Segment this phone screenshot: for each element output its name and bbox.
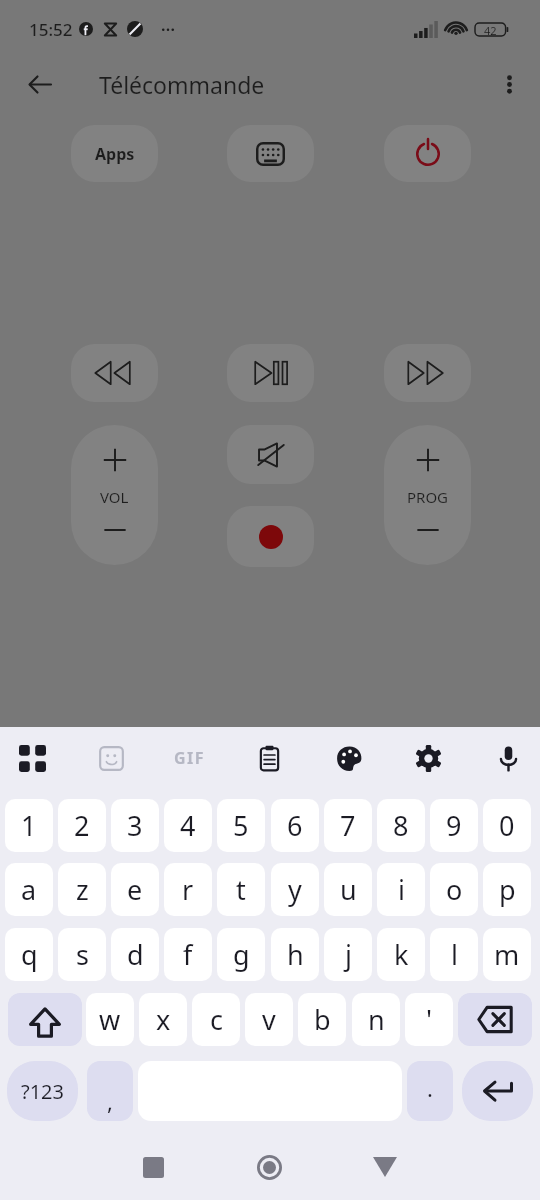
button[interactable]: Shift xyxy=(8,993,82,1046)
button[interactable]: b xyxy=(298,993,346,1046)
button[interactable]: , xyxy=(87,1061,133,1121)
button[interactable] xyxy=(227,506,314,567)
button[interactable]: g xyxy=(217,928,265,981)
button[interactable]: GIF xyxy=(163,731,217,785)
button[interactable] xyxy=(227,125,314,182)
button[interactable]: x xyxy=(139,993,187,1046)
button[interactable]: u xyxy=(324,863,372,916)
staticText: 5 xyxy=(233,807,249,844)
staticText: u xyxy=(340,871,357,908)
button[interactable]: 4 xyxy=(164,799,212,852)
staticText: 3 xyxy=(127,807,143,844)
staticText: j xyxy=(345,936,352,973)
button[interactable]: Voice input xyxy=(481,731,535,785)
button[interactable]: 2 xyxy=(58,799,106,852)
button[interactable]: v xyxy=(245,993,293,1046)
staticText: PROG xyxy=(407,487,449,507)
button[interactable]: VOL up xyxy=(71,425,158,495)
staticText: m xyxy=(494,936,520,973)
staticText: v xyxy=(262,1001,276,1038)
button[interactable]: Enter xyxy=(462,1061,533,1121)
staticText: , xyxy=(107,1086,113,1116)
staticText: VOL xyxy=(100,487,129,507)
button[interactable]: e xyxy=(111,863,159,916)
button[interactable] xyxy=(71,344,158,402)
staticText: d xyxy=(127,936,144,973)
button[interactable] xyxy=(227,425,314,484)
button[interactable]: 5 xyxy=(217,799,265,852)
staticText: Télécommande xyxy=(99,69,265,100)
button[interactable]: c xyxy=(192,993,240,1046)
button[interactable]: n xyxy=(352,993,400,1046)
button[interactable]: 6 xyxy=(271,799,319,852)
button[interactable]: . xyxy=(407,1061,453,1121)
button[interactable]: y xyxy=(271,863,319,916)
button[interactable]: z xyxy=(58,863,106,916)
button[interactable] xyxy=(384,344,471,402)
staticText: c xyxy=(210,1001,223,1038)
staticText: y xyxy=(288,871,302,908)
button[interactable]: h xyxy=(271,928,319,981)
button[interactable]: ' xyxy=(405,993,453,1046)
button[interactable]: j xyxy=(324,928,372,981)
button[interactable]: 7 xyxy=(324,799,372,852)
button[interactable]: a xyxy=(5,863,53,916)
button[interactable]: w xyxy=(86,993,134,1046)
button[interactable]: More options xyxy=(487,62,531,106)
button[interactable]: PROG up xyxy=(384,425,471,495)
button[interactable]: r xyxy=(164,863,212,916)
button[interactable]: f xyxy=(164,928,212,981)
staticText: 9 xyxy=(446,807,462,844)
button[interactable]: Back xyxy=(18,62,62,106)
staticText: ' xyxy=(426,1001,433,1038)
button[interactable]: Clipboard xyxy=(242,731,296,785)
button[interactable] xyxy=(227,344,314,402)
staticText: 1 xyxy=(21,807,37,844)
staticText: g xyxy=(233,936,250,973)
staticText: o xyxy=(446,871,463,908)
button[interactable]: Apps xyxy=(71,125,158,182)
button[interactable]: Apps xyxy=(5,731,59,785)
button[interactable]: 8 xyxy=(377,799,425,852)
button[interactable]: q xyxy=(5,928,53,981)
staticText: k xyxy=(394,936,409,973)
button[interactable]: 3 xyxy=(111,799,159,852)
button[interactable]: d xyxy=(111,928,159,981)
button[interactable]: m xyxy=(483,928,531,981)
staticText: 42 xyxy=(484,23,497,36)
staticText: x xyxy=(156,1001,171,1038)
staticText: w xyxy=(99,1001,121,1038)
button[interactable]: ?123 xyxy=(7,1061,78,1121)
button[interactable]: p xyxy=(483,863,531,916)
staticText: 2 xyxy=(74,807,90,844)
button[interactable]: k xyxy=(377,928,425,981)
button[interactable]: l xyxy=(430,928,478,981)
staticText: e xyxy=(127,871,143,908)
staticText: 4 xyxy=(180,807,196,844)
button[interactable]: i xyxy=(377,863,425,916)
staticText: t xyxy=(236,871,246,908)
button[interactable]: 1 xyxy=(5,799,53,852)
button[interactable]: Back xyxy=(355,1137,415,1197)
staticText: i xyxy=(398,871,405,908)
staticText: s xyxy=(76,936,89,973)
button[interactable] xyxy=(384,125,471,182)
button[interactable]: PROG down xyxy=(384,495,471,565)
staticText: 15:52 xyxy=(29,18,73,41)
button[interactable]: VOL down xyxy=(71,495,158,565)
button[interactable]: s xyxy=(58,928,106,981)
button[interactable]: Settings xyxy=(401,731,455,785)
staticText: b xyxy=(314,1001,331,1038)
button[interactable]: t xyxy=(217,863,265,916)
button[interactable]: Backspace xyxy=(458,993,532,1046)
button[interactable]: 0 xyxy=(483,799,531,852)
button[interactable]: 9 xyxy=(430,799,478,852)
button[interactable]: Stickers xyxy=(84,731,138,785)
staticText: GIF xyxy=(174,747,206,769)
button[interactable]: Themes xyxy=(322,731,376,785)
button[interactable]: o xyxy=(430,863,478,916)
button[interactable]: Recents xyxy=(123,1137,183,1197)
staticText: z xyxy=(76,871,89,908)
button[interactable]: Home xyxy=(239,1137,299,1197)
